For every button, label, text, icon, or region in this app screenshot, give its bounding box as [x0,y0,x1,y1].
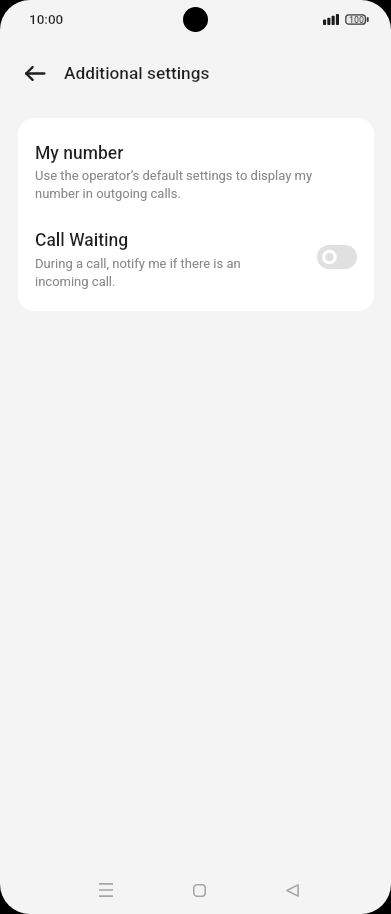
staticText: Use the operator’s default settings to d… [35,168,313,201]
staticText: Call Waiting [35,230,129,251]
button[interactable]: Back [17,55,53,91]
staticText: My number [35,143,124,164]
button[interactable]: Call Waiting toggle [317,245,357,269]
button[interactable]: Home [174,865,224,914]
staticText: 10:00 [29,11,64,27]
staticText: 100 [349,15,364,25]
button[interactable]: Call Waiting [18,213,374,310]
staticText: During a call, notify me if there is an … [35,256,241,289]
button[interactable]: Back [267,865,317,914]
button[interactable]: My number [18,118,374,213]
button[interactable]: Recent apps [81,865,131,914]
staticText: Additional settings [64,63,210,83]
